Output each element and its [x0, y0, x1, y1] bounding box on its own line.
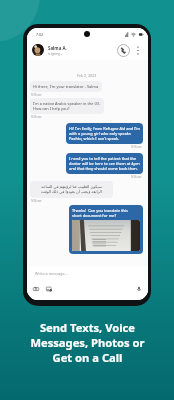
- staticText: 9:36 am: [31, 115, 42, 119]
- staticText: Send Texts, Voice Messages, Photos or Ge…: [30, 320, 145, 365]
- staticText: 9:36 am: [31, 199, 42, 203]
- staticText: سيكون الطبيب هنا لرؤيتهم في الساعة الراب…: [33, 184, 110, 195]
- staticText: Salma A.: [48, 45, 67, 51]
- button[interactable]: Gallery: [45, 285, 53, 293]
- staticText: 7:02: [36, 32, 44, 37]
- staticText: Feb 2, 2023: [77, 73, 97, 78]
- staticText: 9:36 am: [131, 175, 142, 179]
- staticText: I'm a native Arabic speaker in the US. H…: [33, 101, 101, 111]
- staticText: is typing...: [48, 52, 63, 56]
- staticText: 9:36 am: [131, 145, 142, 149]
- button[interactable]: Voice message: [135, 285, 143, 293]
- staticText: 9:36 am: [31, 93, 42, 97]
- staticText: Hi there, I'm your translator - Salma: [33, 84, 99, 89]
- button[interactable]: Call: [117, 44, 130, 57]
- staticText: Thanks! Can you translate this short doc…: [72, 208, 128, 218]
- staticText: Hi! I'm Emily, from Refugee Aid and I'm …: [69, 126, 140, 141]
- button[interactable]: More options: [133, 45, 143, 55]
- staticText: Write a message...: [35, 271, 68, 276]
- staticText: I need you to tell the patient that the …: [69, 156, 140, 171]
- button[interactable]: Camera: [32, 285, 40, 293]
